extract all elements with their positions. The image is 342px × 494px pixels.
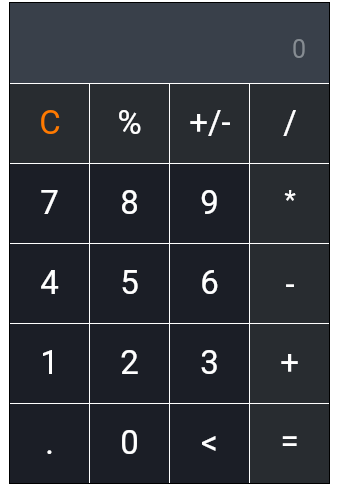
- staticText: 9: [200, 183, 219, 222]
- button[interactable]: 8: [90, 164, 169, 243]
- button[interactable]: 0: [10, 3, 329, 83]
- button[interactable]: 4: [10, 244, 89, 323]
- button[interactable]: Subtract: [250, 244, 329, 323]
- staticText: 6: [200, 263, 219, 302]
- button[interactable]: 5: [90, 244, 169, 323]
- button[interactable]: 9: [170, 164, 249, 243]
- button[interactable]: 2: [90, 324, 169, 403]
- staticText: /: [283, 103, 297, 142]
- button[interactable]: 3: [170, 324, 249, 403]
- staticText: <: [201, 423, 218, 462]
- staticText: 3: [200, 343, 219, 382]
- staticText: 0: [292, 35, 307, 64]
- button[interactable]: 7: [10, 164, 89, 243]
- button[interactable]: Multiply: [250, 164, 329, 243]
- staticText: *: [284, 185, 296, 215]
- staticText: +/-: [189, 103, 231, 142]
- button[interactable]: Percent: [90, 84, 169, 163]
- staticText: .: [45, 423, 54, 462]
- staticText: +: [280, 343, 299, 382]
- staticText: %: [117, 103, 142, 142]
- button[interactable]: Toggle sign: [170, 84, 249, 163]
- button[interactable]: Clear: [10, 84, 89, 163]
- staticText: 5: [120, 263, 139, 302]
- staticText: C: [39, 103, 61, 142]
- staticText: 7: [40, 183, 59, 222]
- button[interactable]: Equals: [250, 404, 329, 483]
- button[interactable]: Add: [250, 324, 329, 403]
- button[interactable]: 1: [10, 324, 89, 403]
- button[interactable]: Backspace: [170, 404, 249, 483]
- staticText: =: [280, 422, 299, 461]
- staticText: 4: [40, 263, 59, 302]
- button[interactable]: 6: [170, 244, 249, 323]
- staticText: 2: [120, 343, 139, 382]
- button[interactable]: Decimal point: [10, 404, 89, 483]
- staticText: -: [285, 265, 295, 304]
- staticText: 0: [120, 423, 139, 462]
- button[interactable]: Divide: [250, 84, 329, 163]
- button[interactable]: 0: [90, 404, 169, 483]
- staticText: 1: [40, 343, 59, 382]
- staticText: 8: [120, 183, 139, 222]
